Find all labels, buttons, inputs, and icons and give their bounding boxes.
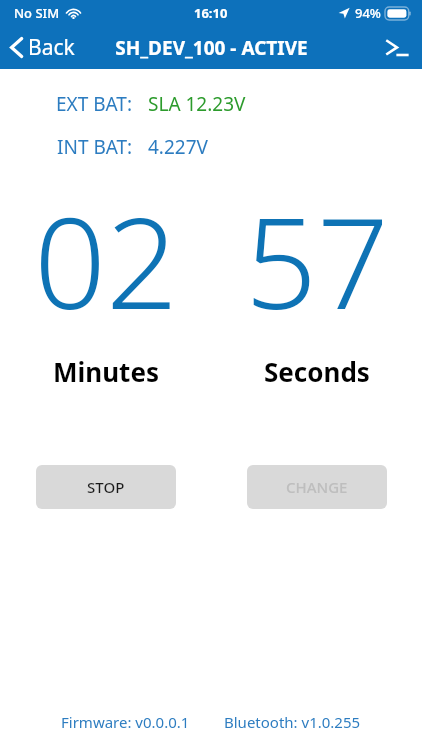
button[interactable]: Terminal console [372,26,422,69]
button[interactable]: Back [0,26,89,69]
staticText: INT BAT: [57,134,133,160]
staticText: 4.227V [148,134,208,160]
staticText: Firmware: v0.0.0.1 [61,712,190,732]
staticText: No SIM [14,4,60,22]
staticText: Seconds [264,354,370,389]
staticText: SLA 12.23V [148,91,246,117]
staticText: 57 [245,174,389,324]
staticText: 94% [355,4,381,22]
staticText: Minutes [53,354,159,389]
button[interactable]: STOP [36,465,176,509]
staticText: 02 [34,174,178,324]
staticText: SH_DEV_100 - ACTIVE [115,35,308,61]
staticText: Back [28,33,75,62]
button[interactable]: CHANGE [247,465,387,509]
staticText: Bluetooth: v1.0.255 [224,712,361,732]
staticText: 16:10 [194,4,228,22]
staticText: CHANGE [286,477,348,497]
staticText: STOP [87,477,125,497]
staticText: EXT BAT: [56,91,133,117]
